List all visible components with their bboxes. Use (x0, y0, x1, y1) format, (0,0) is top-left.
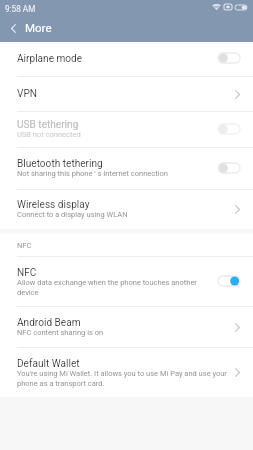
button[interactable]: Android Beam (0, 307, 253, 347)
staticText: USB not connected (17, 130, 81, 139)
staticText: More (25, 21, 52, 34)
button[interactable]: Back (0, 16, 26, 42)
staticText: Airplane mode (17, 53, 83, 65)
button[interactable]: Wireless display (0, 190, 253, 229)
button[interactable]: Default Wallet (0, 348, 253, 397)
staticText: Allow data exchange when the phone touch… (17, 278, 213, 296)
button[interactable]: Bluetooth tethering (0, 148, 253, 189)
staticText: Not sharing this phone ′ s Internet conn… (17, 169, 168, 178)
staticText: NFC (17, 241, 32, 250)
staticText: NFC (17, 267, 37, 279)
staticText: Default Wallet (17, 358, 80, 370)
staticText: 9:58 AM (5, 4, 36, 14)
button[interactable]: USB tethering (0, 112, 253, 147)
button[interactable]: Airplane mode (0, 42, 253, 76)
staticText: USB tethering (17, 119, 79, 131)
staticText: NFC content sharing is on (17, 328, 104, 337)
staticText: Bluetooth tethering (17, 158, 103, 170)
staticText: Android Beam (17, 317, 81, 329)
staticText: VPN (17, 88, 37, 100)
staticText: You′re using Mi Wallet. It allows you to… (17, 369, 230, 387)
button[interactable]: NFC (0, 257, 253, 306)
staticText: Connect to a display using WLAN (17, 210, 128, 219)
button[interactable]: VPN (0, 77, 253, 111)
staticText: Wireless display (17, 199, 90, 211)
